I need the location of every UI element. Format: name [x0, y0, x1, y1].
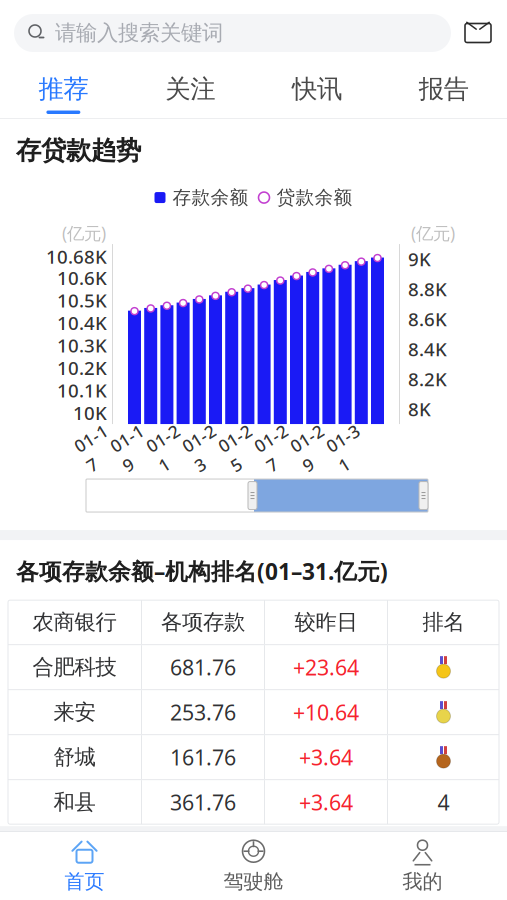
staticText: 8.2K	[408, 367, 447, 391]
staticText: 请输入搜索关键词	[55, 20, 223, 46]
staticText: 各项存款	[161, 609, 245, 635]
staticText: 农商银行	[32, 609, 116, 635]
staticText: 存款余额	[172, 186, 248, 209]
staticText: 01-23	[187, 425, 223, 471]
button[interactable]: 首页	[0, 832, 169, 900]
button[interactable]: 请输入搜索关键词	[14, 14, 451, 52]
staticText: 361.76	[170, 788, 236, 816]
staticText: 来安	[53, 699, 95, 725]
staticText: 01-25	[223, 425, 259, 471]
staticText: 排名	[422, 609, 464, 635]
button[interactable]: 消息	[463, 18, 493, 48]
staticText: 较昨日	[294, 609, 357, 635]
staticText: 8.8K	[408, 277, 447, 301]
staticText: 01-29	[295, 425, 331, 471]
staticText: 10.5K	[57, 288, 107, 313]
staticText: 161.76	[170, 743, 236, 771]
staticText: +3.64	[299, 788, 353, 816]
staticText: 01-17	[79, 425, 115, 471]
staticText: 681.76	[170, 653, 236, 681]
staticText: 贷款余额	[276, 186, 352, 209]
button[interactable]: 我的	[338, 832, 507, 900]
staticText: 存贷款趋势	[16, 135, 141, 166]
button[interactable]: 关注	[127, 66, 254, 118]
staticText: 各项存款余额–机构排名(01–31.亿元)	[16, 556, 388, 586]
staticText: 8K	[408, 397, 431, 421]
staticText: 10.6K	[57, 265, 107, 290]
button[interactable]: 驾驶舱	[169, 832, 338, 900]
staticText: 10K	[73, 400, 107, 425]
staticText: 驾驶舱	[223, 869, 283, 894]
staticText: 01-31	[331, 425, 367, 471]
staticText: 9K	[408, 247, 431, 271]
button[interactable]: 报告	[380, 66, 507, 118]
staticText: 报告	[419, 73, 469, 104]
staticText: (亿元)	[411, 221, 455, 244]
staticText: 10.68K	[46, 244, 107, 269]
staticText: +23.64	[293, 653, 359, 681]
button[interactable]: 推荐	[0, 66, 127, 118]
staticText: 01-19	[115, 425, 151, 471]
staticText: 推荐	[38, 73, 88, 104]
staticText: 253.76	[170, 698, 236, 726]
staticText: 合肥科技	[32, 654, 116, 680]
staticText: 10.4K	[57, 310, 107, 335]
staticText: 首页	[64, 869, 104, 894]
button[interactable]: 快讯	[253, 66, 380, 118]
staticText: 我的	[402, 869, 442, 894]
staticText: (亿元)	[62, 221, 106, 244]
staticText: 4	[437, 788, 449, 816]
staticText: 10.3K	[57, 333, 107, 358]
staticText: 01-21	[151, 425, 187, 471]
staticText: 8.6K	[408, 307, 447, 331]
staticText: 10.2K	[57, 355, 107, 380]
staticText: 01-27	[259, 425, 295, 471]
staticText: +10.64	[293, 698, 359, 726]
staticText: 和县	[53, 789, 95, 815]
staticText: 8.4K	[408, 337, 447, 361]
staticText: 关注	[165, 73, 215, 104]
staticText: 10.1K	[57, 378, 107, 403]
staticText: 舒城	[53, 744, 95, 770]
staticText: 快讯	[292, 73, 342, 104]
staticText: +3.64	[299, 743, 353, 771]
